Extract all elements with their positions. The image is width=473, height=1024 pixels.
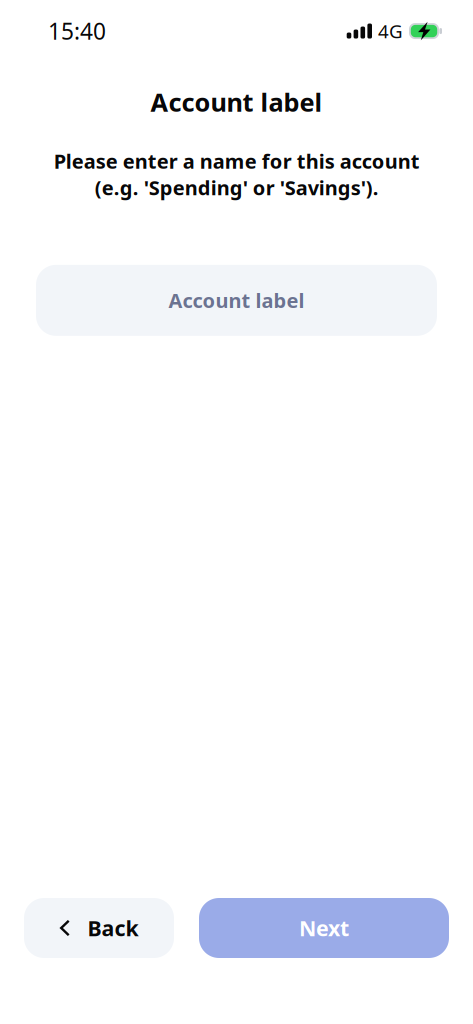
- staticText: Please enter a name for this account (e.…: [53, 148, 419, 201]
- staticText: Account label: [150, 85, 322, 119]
- staticText: 15:40: [48, 16, 106, 46]
- button[interactable]: Account label: [36, 265, 437, 336]
- button[interactable]: Back: [24, 898, 174, 958]
- staticText: Next: [299, 914, 349, 942]
- staticText: 4G: [378, 19, 403, 43]
- staticText: Back: [87, 914, 138, 942]
- button[interactable]: Next: [199, 898, 449, 958]
- staticText: Account label: [168, 287, 304, 314]
